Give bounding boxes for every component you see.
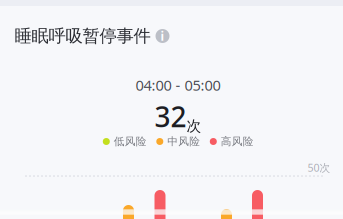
staticText: 04:00 - 05:00: [135, 75, 220, 95]
staticText: 高风险: [221, 135, 254, 148]
staticText: i: [160, 28, 164, 44]
staticText: 32: [154, 98, 186, 135]
staticText: 睡眠呼吸暂停事件: [14, 25, 150, 47]
staticText: 50次: [307, 160, 330, 175]
button[interactable]: 睡眠呼吸暂停事件 说明: [14, 25, 169, 47]
staticText: 次: [186, 117, 201, 135]
staticText: 中风险: [167, 135, 200, 148]
staticText: 低风险: [114, 135, 147, 148]
